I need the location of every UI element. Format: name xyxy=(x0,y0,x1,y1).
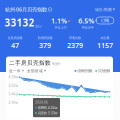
staticText: 2024.06 xyxy=(35,100,48,104)
staticText: 带看次数 xyxy=(69,36,81,40)
staticText: (杭州) xyxy=(52,61,60,66)
staticText: 379 xyxy=(39,40,51,50)
staticText: 2379 xyxy=(67,40,83,50)
staticText: 环比上月 xyxy=(55,25,67,29)
staticText: 4.02w xyxy=(8,83,18,88)
button[interactable]: 订阅 xyxy=(96,17,114,24)
staticText: 3.46w xyxy=(8,92,18,96)
button[interactable]: 近一年 xyxy=(9,69,24,73)
staticText: 元/㎡ xyxy=(35,24,42,28)
staticText: 订阅 xyxy=(101,18,109,23)
staticText: 新增房源量 xyxy=(37,36,52,40)
staticText: 贝壳价 3.33w xyxy=(38,111,58,115)
staticText: 贝壳指数 xyxy=(98,69,110,73)
staticText: 城区/商圈 xyxy=(95,7,112,12)
staticText: 成交量 xyxy=(100,36,109,40)
staticText: 1157 xyxy=(97,40,113,50)
staticText: 33132 xyxy=(4,16,34,29)
staticText: 挂牌价 4.02w xyxy=(38,105,58,110)
staticText: 1.1% xyxy=(51,16,67,25)
staticText: 挂牌价指数 xyxy=(77,69,92,73)
staticText: 47 xyxy=(11,40,19,50)
button[interactable]: 全部区域 xyxy=(27,69,46,73)
button[interactable]: 城区/商圈 xyxy=(95,7,115,12)
staticText: 在售房源量 xyxy=(7,36,22,40)
staticText: 二手房贝壳指数 xyxy=(9,59,51,66)
staticText: 4.58w xyxy=(8,75,18,79)
staticText: 杭州·06月贝壳指数 xyxy=(5,6,47,13)
staticText: 6.5% xyxy=(78,16,94,25)
staticText: 2.90w xyxy=(8,100,18,105)
staticText: 全部区域 xyxy=(27,69,43,73)
staticText: 近一年 xyxy=(9,69,21,73)
staticText: 同比去年 xyxy=(82,25,94,29)
